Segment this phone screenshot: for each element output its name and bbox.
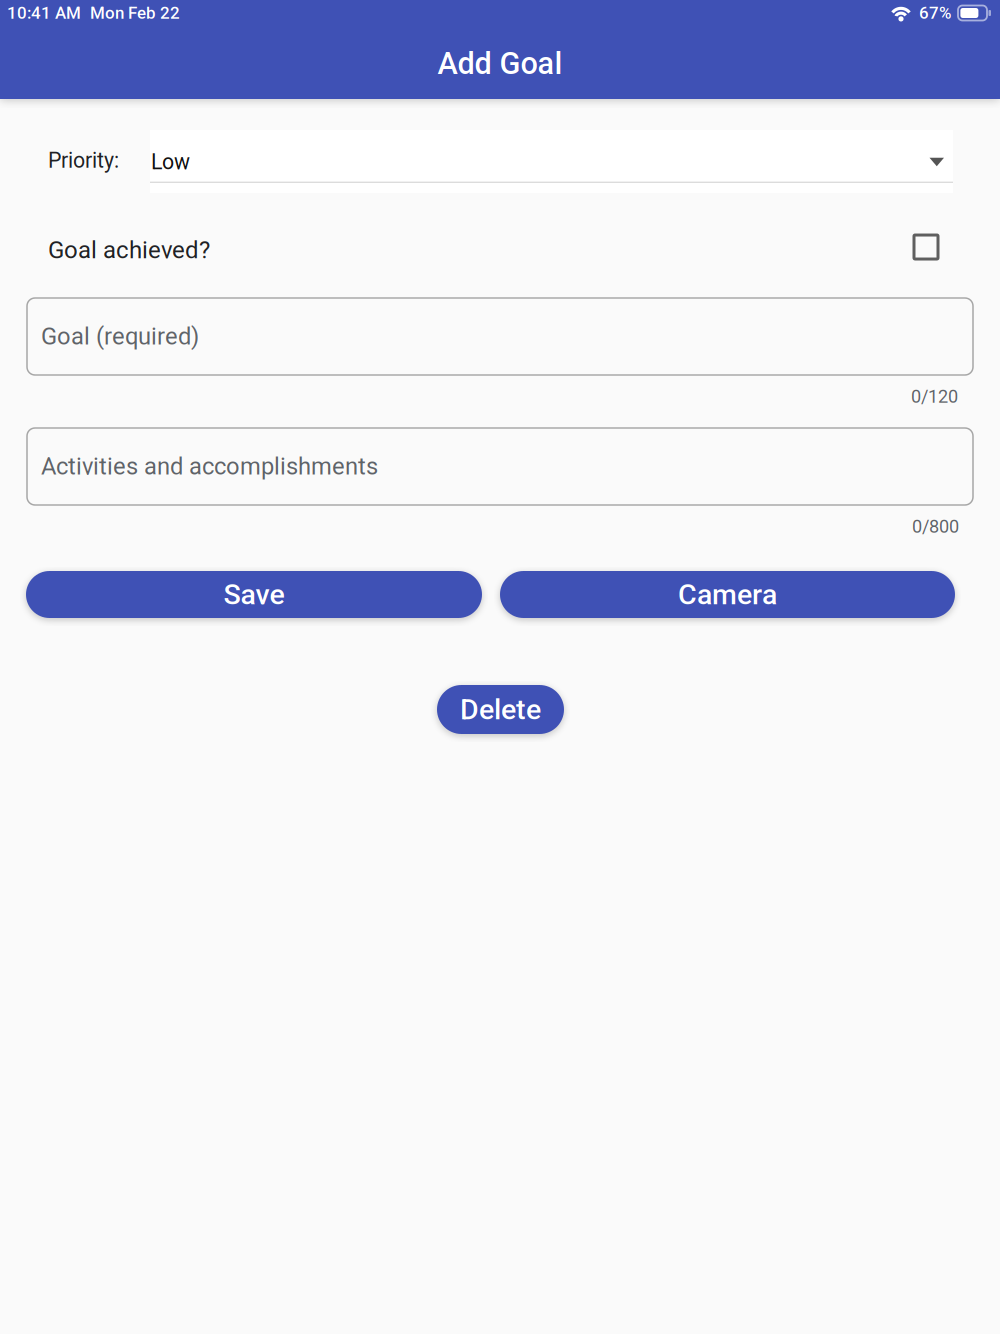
staticText: Activities and accomplishments: [41, 453, 378, 480]
button[interactable]: Camera: [500, 571, 955, 618]
staticText: 67%: [919, 3, 951, 23]
button[interactable]: Goal (required): [27, 298, 973, 375]
button[interactable]: Activities and accomplishments: [27, 428, 973, 505]
staticText: 0/120: [911, 386, 958, 407]
button[interactable]: Goal achieved: [914, 235, 938, 259]
staticText: Camera: [678, 578, 777, 611]
staticText: Save: [223, 578, 284, 611]
staticText: 0/800: [912, 516, 959, 537]
staticText: Add Goal: [437, 45, 562, 81]
staticText: Goal (required): [41, 323, 199, 350]
staticText: Priority:: [48, 148, 119, 173]
staticText: Low: [151, 149, 190, 174]
staticText: Goal achieved?: [48, 236, 210, 264]
button[interactable]: Save: [26, 571, 482, 618]
button[interactable]: Delete: [437, 685, 564, 734]
staticText: Mon Feb 22: [90, 3, 180, 23]
staticText: Delete: [460, 693, 541, 726]
button[interactable]: Priority, Low: [150, 130, 953, 193]
staticText: 10:41 AM: [7, 3, 81, 23]
